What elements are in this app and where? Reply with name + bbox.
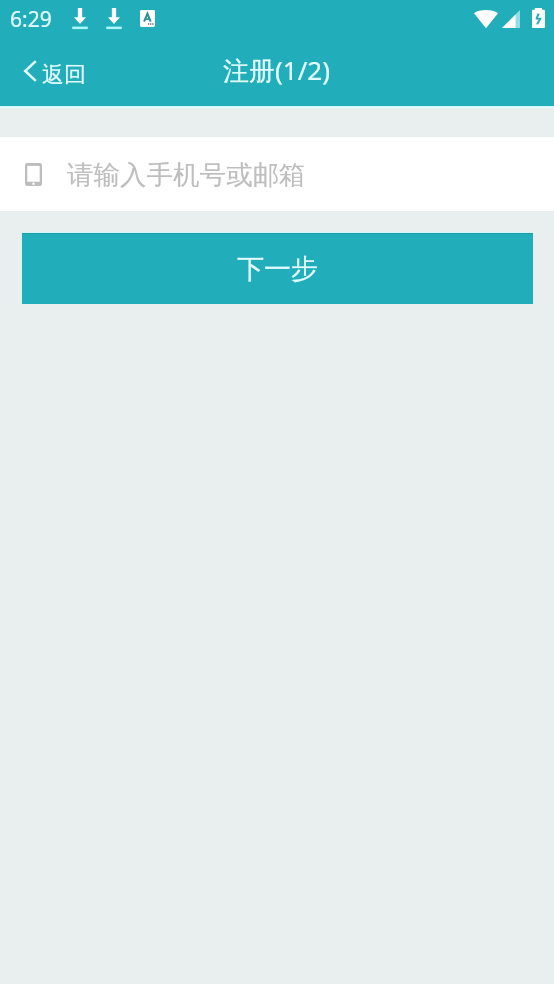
other: Translate [140, 10, 155, 27]
staticText: 下一步 [237, 252, 318, 286]
button[interactable]: 返回 [0, 46, 102, 98]
button[interactable]: 请输入手机号或邮箱 [0, 137, 554, 211]
staticText: 返回 [42, 61, 86, 89]
button[interactable]: 下一步 [22, 234, 533, 304]
staticText: 请输入手机号或邮箱 [67, 158, 306, 191]
staticText: 6:29 [10, 5, 52, 34]
other: Download [106, 8, 122, 30]
staticText: 注册(1/2) [223, 52, 331, 88]
other: Battery charging [532, 8, 545, 28]
other: Download [72, 8, 88, 30]
other: Wi-Fi [474, 8, 498, 29]
other: Signal strength [502, 10, 520, 28]
